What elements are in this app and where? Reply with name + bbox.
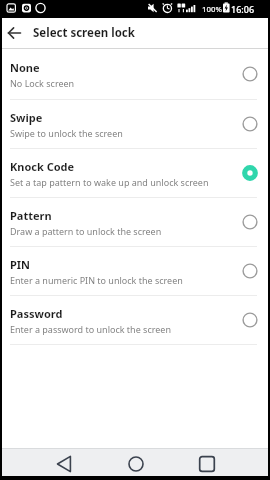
button[interactable]	[193, 450, 220, 477]
staticText: Enter a password to unlock the screen	[10, 323, 171, 335]
button[interactable]: Password	[0, 296, 270, 344]
button[interactable]: Pattern	[0, 198, 270, 246]
staticText: Pattern	[10, 208, 52, 223]
staticText: Select screen lock	[33, 25, 135, 41]
button[interactable]: PIN	[0, 247, 270, 295]
button[interactable]: Swipe	[0, 100, 270, 148]
staticText: Password	[10, 306, 63, 321]
button[interactable]	[122, 450, 149, 477]
staticText: Set a tap pattern to wake up and unlock …	[10, 176, 209, 188]
staticText: 16:06	[231, 3, 255, 15]
staticText: PIN	[10, 257, 31, 272]
staticText: 100%	[202, 4, 222, 15]
staticText: None	[10, 60, 40, 75]
staticText: Swipe to unlock the screen	[10, 127, 123, 139]
button[interactable]: None	[0, 49, 270, 99]
staticText: Swipe	[10, 110, 43, 125]
staticText: Draw a pattern to unlock the screen	[10, 225, 162, 237]
staticText: Knock Code	[10, 159, 75, 174]
button[interactable]: Knock Code	[0, 149, 270, 197]
staticText: No Lock screen	[10, 77, 75, 89]
staticText: Enter a numeric PIN to unlock the screen	[10, 274, 183, 286]
button[interactable]	[50, 450, 77, 477]
button[interactable]	[0, 18, 30, 48]
